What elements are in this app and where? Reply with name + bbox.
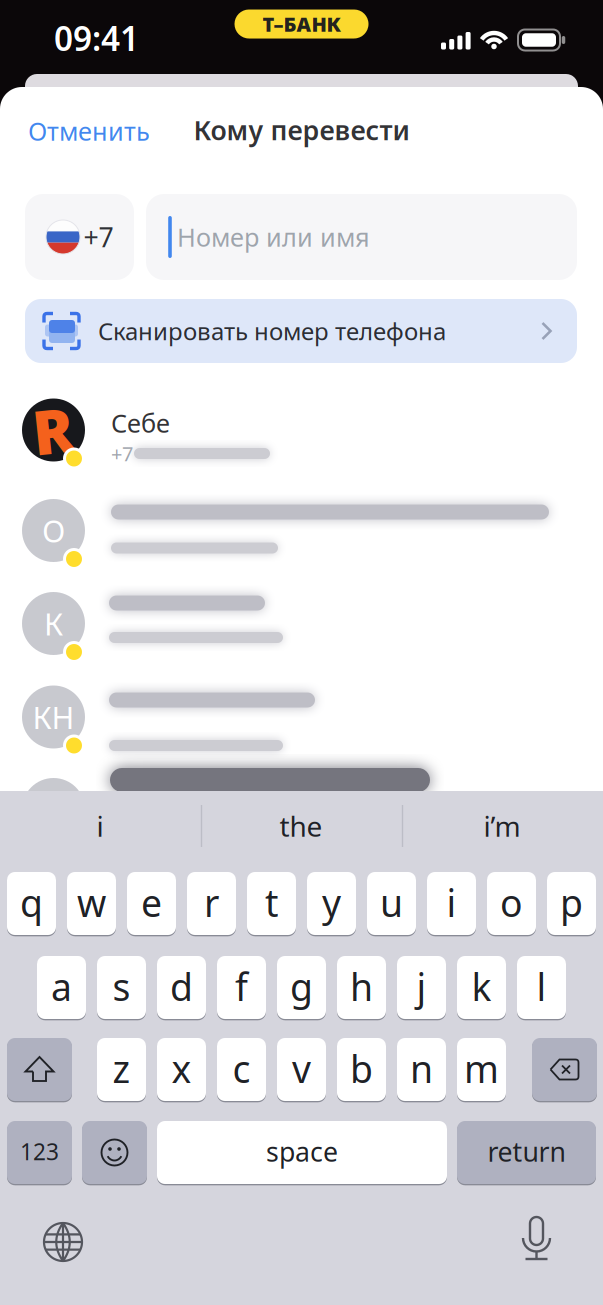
staticText: Отменить	[28, 114, 150, 148]
staticText: b	[350, 1044, 373, 1093]
button[interactable]: R	[0, 384, 603, 477]
button[interactable]: f	[217, 956, 266, 1019]
button[interactable]	[33, 1212, 93, 1272]
staticText: r	[204, 878, 219, 927]
button[interactable]: КН	[0, 670, 603, 763]
button[interactable]: i’m	[412, 801, 592, 851]
staticText: w	[77, 878, 106, 927]
staticText: s	[112, 962, 130, 1011]
button[interactable]: r	[187, 872, 236, 935]
staticText: the	[279, 807, 322, 845]
button[interactable]: Сканировать номер телефона	[25, 299, 577, 363]
staticText: +7	[83, 219, 113, 255]
staticText: return	[487, 1134, 565, 1169]
button[interactable]: the	[211, 801, 391, 851]
staticText: К	[44, 603, 63, 644]
staticText: Сканировать номер телефона	[98, 315, 446, 347]
button[interactable]	[146, 194, 577, 280]
button[interactable]: v	[277, 1038, 326, 1101]
button[interactable]: m	[457, 1038, 506, 1101]
button[interactable]: y	[307, 872, 356, 935]
staticText: Номер или имя	[177, 220, 370, 254]
staticText: o	[500, 878, 523, 927]
staticText: y	[322, 878, 341, 927]
staticText: c	[232, 1044, 250, 1093]
staticText: i	[96, 807, 103, 845]
button[interactable]: d	[157, 956, 206, 1019]
staticText: n	[410, 1044, 433, 1093]
button[interactable]: i	[427, 872, 476, 935]
staticText: f	[235, 962, 248, 1011]
staticText: space	[266, 1134, 338, 1169]
button[interactable]: b	[337, 1038, 386, 1101]
button[interactable]	[506, 1210, 566, 1270]
button[interactable]: s	[97, 956, 146, 1019]
button[interactable]	[532, 1038, 597, 1101]
button[interactable]: c	[217, 1038, 266, 1101]
staticText: a	[51, 962, 72, 1011]
staticText: КН	[32, 697, 74, 737]
button[interactable]: p	[547, 872, 596, 935]
button[interactable]: space	[157, 1121, 447, 1184]
staticText: m	[464, 1044, 499, 1093]
staticText: 123	[20, 1136, 59, 1166]
staticText: 09:41	[54, 16, 139, 60]
staticText: +7	[111, 440, 133, 467]
button[interactable]: k	[457, 956, 506, 1019]
staticText: d	[170, 962, 193, 1011]
button[interactable]	[82, 1121, 147, 1184]
staticText: v	[292, 1044, 311, 1093]
button[interactable]: g	[277, 956, 326, 1019]
staticText: l	[536, 962, 546, 1011]
button[interactable]: q	[7, 872, 56, 935]
button[interactable]: n	[397, 1038, 446, 1101]
staticText: q	[20, 878, 43, 927]
button[interactable]: О	[0, 484, 603, 577]
staticText: О	[42, 510, 65, 551]
button[interactable]: Отменить	[28, 109, 198, 153]
staticText: i	[446, 878, 456, 927]
staticText: Т–БАНК	[262, 11, 340, 37]
button[interactable]: h	[337, 956, 386, 1019]
staticText: k	[471, 962, 491, 1011]
button[interactable]: x	[157, 1038, 206, 1101]
staticText: R	[32, 389, 74, 471]
button[interactable]: e	[127, 872, 176, 935]
button[interactable]: a	[37, 956, 86, 1019]
staticText: t	[265, 878, 278, 927]
staticText: Кому перевести	[193, 112, 409, 148]
staticText: p	[560, 878, 583, 927]
button[interactable]: z	[97, 1038, 146, 1101]
button[interactable]: u	[367, 872, 416, 935]
staticText: h	[350, 962, 373, 1011]
button[interactable]: l	[517, 956, 566, 1019]
staticText: Себе	[111, 406, 170, 440]
staticText: e	[141, 878, 162, 927]
staticText: u	[380, 878, 403, 927]
button[interactable]: w	[67, 872, 116, 935]
button[interactable]: i	[10, 801, 190, 851]
staticText: i’m	[483, 807, 520, 845]
staticText: g	[290, 962, 313, 1011]
button[interactable]: 123	[7, 1121, 72, 1184]
staticText: x	[171, 1044, 191, 1093]
staticText: j	[416, 962, 426, 1011]
button[interactable]: t	[247, 872, 296, 935]
staticText: z	[112, 1044, 130, 1093]
button[interactable]: +7	[25, 194, 134, 280]
button[interactable]	[7, 1038, 72, 1101]
button[interactable]: o	[487, 872, 536, 935]
button[interactable]: return	[457, 1121, 596, 1184]
button[interactable]: К	[0, 577, 603, 670]
button[interactable]: j	[397, 956, 446, 1019]
